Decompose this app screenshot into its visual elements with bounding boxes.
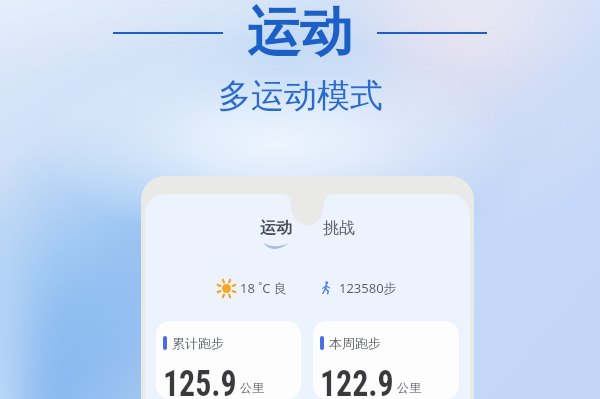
button[interactable]: 挑战 — [323, 218, 355, 238]
staticText: 累计跑步 — [172, 335, 224, 351]
staticText: 挑战 — [323, 218, 355, 238]
staticText: 125.9 — [163, 363, 237, 399]
staticText: 18 ˚C 良 — [240, 279, 287, 297]
button[interactable]: 累计跑步 — [156, 321, 301, 399]
staticText: 多运动模式 — [218, 75, 383, 117]
staticText: 123580步 — [339, 279, 397, 297]
staticText: 本周跑步 — [329, 335, 381, 351]
staticText: 运动 — [247, 0, 353, 66]
button[interactable]: 运动 — [260, 218, 292, 251]
staticText: 公里 — [397, 380, 421, 395]
other: Steps — [319, 281, 333, 295]
staticText: 公里 — [240, 380, 264, 395]
button[interactable]: 本周跑步 — [313, 321, 459, 399]
staticText: 122.9 — [320, 363, 394, 399]
staticText: 运动 — [260, 218, 292, 238]
other: Weather — [218, 280, 235, 297]
